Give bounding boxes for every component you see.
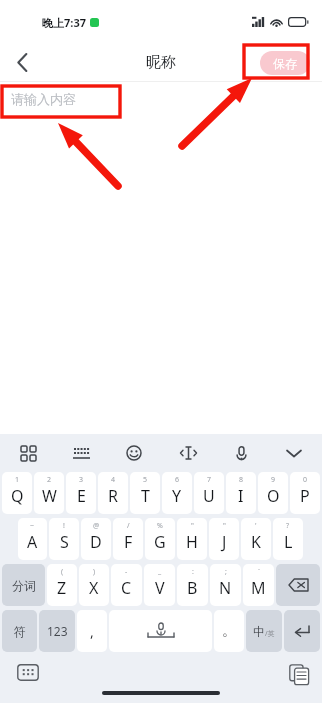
button[interactable]: Enter: [284, 610, 320, 652]
staticText: 4: [111, 475, 116, 485]
button[interactable]: ": [209, 518, 239, 560]
staticText: M: [251, 577, 266, 599]
button[interactable]: 0: [290, 472, 320, 514]
button[interactable]: /: [113, 518, 143, 560]
staticText: ': [255, 521, 257, 531]
staticText: O: [267, 485, 280, 507]
button[interactable]: 8: [226, 472, 256, 514]
staticText: D: [90, 531, 102, 553]
button[interactable]: 5: [130, 472, 160, 514]
button[interactable]: 中: [246, 610, 282, 652]
staticText: /英: [265, 629, 275, 639]
staticText: 中: [253, 624, 265, 639]
staticText: 0: [303, 475, 308, 485]
button[interactable]: 符: [2, 610, 37, 652]
staticText: `: [258, 567, 260, 577]
staticText: 8: [239, 475, 244, 485]
staticText: 5: [143, 475, 148, 485]
button[interactable]: 7: [194, 472, 224, 514]
staticText: A: [27, 531, 38, 553]
staticText: 7: [207, 475, 212, 485]
staticText: 3: [79, 475, 84, 485]
button[interactable]: Edit text: [170, 438, 206, 468]
button[interactable]: _: [144, 564, 175, 606]
button[interactable]: 。: [214, 610, 244, 652]
button[interactable]: ): [79, 564, 109, 606]
staticText: R: [108, 485, 118, 507]
staticText: ;: [225, 567, 227, 577]
staticText: 符: [14, 624, 26, 639]
staticText: F: [124, 531, 133, 553]
staticText: Y: [172, 485, 182, 507]
button[interactable]: Hide keyboard: [276, 438, 312, 468]
staticText: P: [300, 485, 310, 507]
staticText: H: [186, 531, 198, 553]
button[interactable]: 123: [39, 610, 75, 652]
button[interactable]: Apps: [10, 438, 46, 468]
staticText: X: [89, 577, 99, 599]
staticText: K: [251, 531, 261, 553]
staticText: 昵称: [146, 53, 176, 72]
staticText: G: [154, 531, 166, 553]
staticText: B: [187, 577, 198, 599]
button[interactable]: -: [111, 564, 142, 606]
staticText: @: [93, 521, 100, 531]
button[interactable]: :: [177, 564, 208, 606]
button[interactable]: 4: [98, 472, 128, 514]
staticText: ": [191, 521, 194, 531]
button[interactable]: Clipboard: [286, 662, 312, 686]
button[interactable]: ': [241, 518, 271, 560]
button[interactable]: Switch keyboard: [16, 663, 40, 682]
button[interactable]: !: [49, 518, 79, 560]
button[interactable]: Backspace: [276, 564, 320, 606]
button[interactable]: Voice input: [223, 438, 259, 468]
staticText: -: [125, 567, 128, 577]
staticText: 123: [47, 623, 68, 639]
button[interactable]: ;: [210, 564, 241, 606]
button[interactable]: ?: [273, 518, 303, 560]
button[interactable]: Back: [0, 44, 44, 81]
button[interactable]: 3: [66, 472, 96, 514]
button[interactable]: ,: [77, 610, 107, 652]
staticText: 保存: [273, 56, 297, 71]
staticText: N: [219, 577, 232, 599]
staticText: Z: [57, 577, 67, 599]
staticText: C: [121, 577, 132, 599]
staticText: 1: [15, 475, 20, 485]
button[interactable]: 保存: [260, 51, 310, 75]
staticText: %: [157, 521, 163, 531]
button[interactable]: %: [145, 518, 175, 560]
staticText: W: [42, 485, 57, 507]
staticText: !: [63, 521, 65, 531]
staticText: /: [127, 521, 130, 531]
button[interactable]: 请输入内容: [0, 82, 322, 115]
staticText: ): [93, 567, 96, 577]
button[interactable]: 6: [162, 472, 192, 514]
staticText: S: [60, 531, 69, 553]
staticText: E: [77, 485, 86, 507]
button[interactable]: 2: [34, 472, 64, 514]
staticText: 2: [47, 475, 52, 485]
staticText: L: [284, 531, 293, 553]
staticText: U: [203, 485, 215, 507]
staticText: 晚上7:37: [42, 15, 86, 30]
staticText: 。: [222, 622, 236, 640]
button[interactable]: 9: [258, 472, 288, 514]
button[interactable]: 1: [2, 472, 32, 514]
button[interactable]: ": [177, 518, 207, 560]
button[interactable]: Keyboard layout: [63, 438, 99, 468]
button[interactable]: Space: [109, 610, 212, 652]
button[interactable]: Emoji: [116, 438, 152, 468]
staticText: I: [238, 485, 244, 507]
button[interactable]: ~: [18, 518, 47, 560]
staticText: V: [155, 577, 165, 599]
staticText: 请输入内容: [11, 91, 76, 107]
staticText: ?: [286, 521, 290, 531]
staticText: Q: [11, 485, 24, 507]
button[interactable]: 分词: [2, 564, 45, 606]
staticText: 6: [175, 475, 180, 485]
button[interactable]: @: [81, 518, 111, 560]
staticText: T: [141, 485, 150, 507]
button[interactable]: (: [47, 564, 77, 606]
button[interactable]: `: [243, 564, 274, 606]
